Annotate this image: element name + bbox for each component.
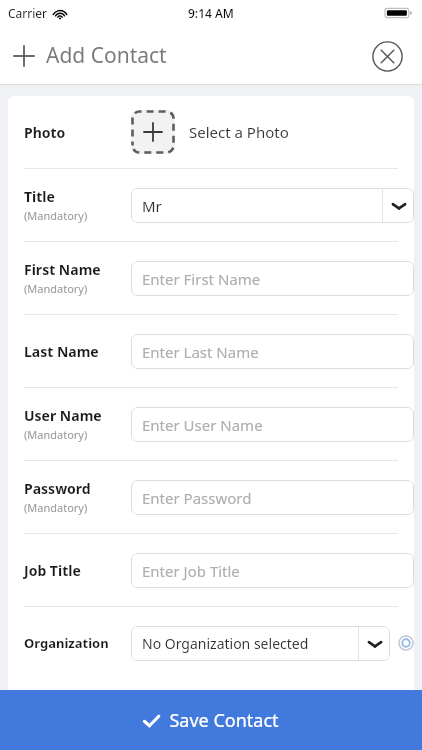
staticText: (Mandatory) (24, 500, 88, 515)
staticText: Select a Photo (189, 122, 289, 142)
staticText: Carrier (8, 5, 48, 21)
staticText: (Mandatory) (24, 281, 88, 296)
staticText: (Mandatory) (24, 208, 88, 223)
staticText: Password (24, 479, 91, 498)
button[interactable]: No Organization selected (131, 626, 390, 661)
button[interactable]: Save Contact (0, 690, 422, 750)
staticText: Photo (24, 123, 66, 142)
staticText: Enter Password (142, 488, 252, 508)
button[interactable]: Close (370, 39, 404, 73)
staticText: Enter First Name (142, 269, 261, 289)
staticText: Last Name (24, 342, 99, 361)
staticText: Add Contact (46, 41, 167, 70)
staticText: No Organization selected (142, 634, 309, 653)
button[interactable]: Enter Job Title (131, 553, 414, 588)
button[interactable]: Enter First Name (131, 261, 414, 296)
button[interactable]: Enter Last Name (131, 334, 414, 369)
staticText: Organization (24, 634, 109, 652)
staticText: Enter User Name (142, 415, 263, 435)
button[interactable]: Refresh organizations (398, 632, 414, 654)
button[interactable]: Enter User Name (131, 407, 414, 442)
button[interactable]: Mr (131, 188, 414, 223)
staticText: Job Title (24, 561, 81, 580)
staticText: 9:14 AM (188, 5, 234, 21)
button[interactable]: Add Contact (12, 41, 167, 70)
staticText: Enter Job Title (142, 561, 240, 581)
staticText: First Name (24, 260, 101, 279)
staticText: Mr (142, 196, 162, 216)
staticText: Save Contact (169, 708, 279, 733)
button[interactable]: Photo (8, 96, 414, 168)
staticText: (Mandatory) (24, 427, 88, 442)
staticText: User Name (24, 406, 102, 425)
button[interactable]: Enter Password (131, 480, 414, 515)
staticText: Title (24, 187, 55, 206)
staticText: Enter Last Name (142, 342, 259, 362)
